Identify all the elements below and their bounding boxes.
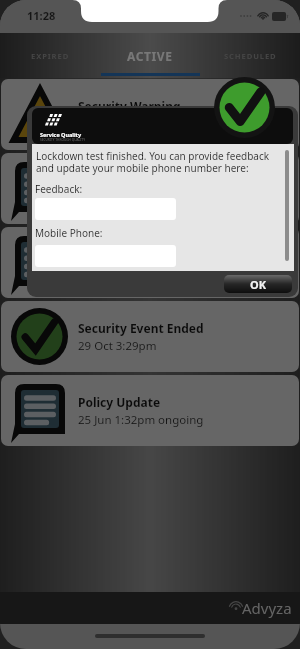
button[interactable]: Policy Update bbox=[1, 227, 299, 298]
staticText: Security Warning bbox=[78, 98, 181, 114]
button[interactable]: ACTIVE bbox=[100, 33, 200, 78]
staticText: Advyza bbox=[242, 598, 292, 618]
staticText: 11:28 bbox=[27, 8, 56, 23]
button[interactable]: Security Event Ended bbox=[1, 301, 299, 372]
staticText: EXPIRED bbox=[31, 51, 70, 61]
button[interactable]: Policy Update bbox=[1, 375, 299, 446]
staticText: SCHEDULED bbox=[224, 51, 277, 61]
staticText: and update your mobile phone number here… bbox=[36, 161, 249, 175]
staticText: 13 Nov 4:15pm ongoing bbox=[78, 264, 208, 280]
staticText: Policy Update bbox=[78, 394, 161, 410]
staticText: Policy Update bbox=[78, 172, 161, 188]
staticText: 21 Dec 9:05am ongoing bbox=[78, 190, 206, 206]
staticText: SECURITY THROUGH QUALITY bbox=[40, 138, 85, 142]
staticText: OK bbox=[250, 277, 267, 292]
staticText: Service Quality bbox=[40, 131, 82, 138]
staticText: 19 Jan 12:30pm - 19 Jan 1pm bbox=[78, 116, 231, 132]
staticText: Lockdown test finished. You can provide … bbox=[36, 149, 270, 163]
button[interactable]: OK bbox=[224, 275, 292, 293]
staticText: ACTIVE bbox=[127, 48, 173, 64]
staticText: 25 Jun 1:32pm ongoing bbox=[78, 412, 204, 428]
button[interactable]: SCHEDULED bbox=[200, 33, 300, 78]
button[interactable]: EXPIRED bbox=[0, 33, 100, 78]
staticText: Security Event Ended bbox=[78, 320, 204, 336]
button[interactable]: Security Warning bbox=[1, 79, 299, 150]
button[interactable]: Event acknowledged bbox=[214, 77, 275, 138]
button[interactable]: Policy Update bbox=[1, 153, 299, 224]
staticText: Feedback: bbox=[35, 182, 83, 196]
staticText: Mobile Phone: bbox=[35, 226, 103, 240]
staticText: 29 Oct 3:29pm bbox=[78, 338, 157, 354]
